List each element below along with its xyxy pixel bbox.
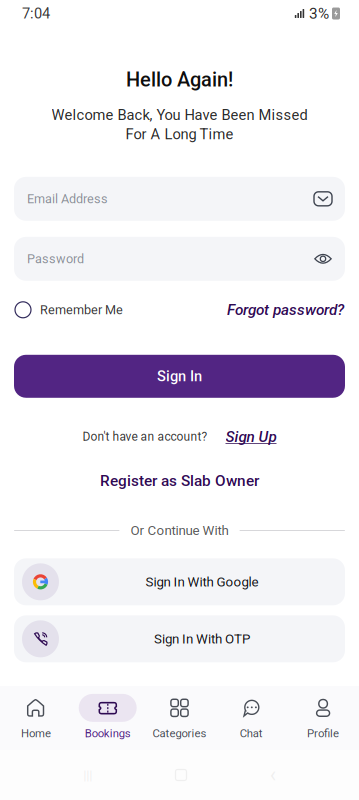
button[interactable]: Sign In With OTP (14, 615, 345, 662)
staticText: Chat (240, 727, 263, 740)
button[interactable]: Profile (287, 694, 359, 740)
button[interactable]: Categories (144, 694, 215, 740)
staticText: Or Continue With (130, 523, 228, 538)
staticText: Hello Again! (126, 68, 233, 91)
staticText: 3% (309, 4, 329, 22)
staticText: Sign In (157, 368, 202, 385)
button[interactable]: Bookings (72, 694, 144, 740)
button[interactable]: Chat (215, 694, 287, 740)
staticText: Register as Slab Owner (100, 472, 259, 490)
staticText: Forgot password? (227, 301, 344, 319)
button[interactable]: Register as Slab Owner (100, 472, 259, 490)
staticText: Remember Me (40, 302, 123, 317)
staticText: For A Long Time (125, 126, 233, 143)
button[interactable]: Sign In With Google (14, 558, 345, 605)
staticText: Don't have an account? (82, 430, 207, 444)
button[interactable]: Sign In (14, 355, 345, 398)
staticText: Profile (307, 727, 339, 740)
button[interactable]: Home (0, 694, 72, 740)
staticText: ||| (83, 767, 92, 783)
staticText: Welcome Back, You Have Been Missed (51, 106, 307, 124)
staticText: ‹ (270, 762, 276, 787)
staticText: Password (27, 251, 84, 266)
staticText: 7:04 (22, 5, 50, 22)
button[interactable]: Forgot password? (227, 301, 344, 319)
button[interactable]: Sign Up (225, 428, 276, 446)
staticText: Bookings (85, 727, 131, 740)
staticText: Sign In With Google (145, 574, 258, 590)
staticText: Home (21, 727, 51, 740)
staticText: Sign In With OTP (154, 631, 250, 647)
button[interactable]: Remember Me (15, 302, 123, 318)
staticText: Sign Up (225, 428, 276, 446)
staticText: Email Address (27, 191, 108, 206)
staticText: Categories (152, 727, 206, 740)
